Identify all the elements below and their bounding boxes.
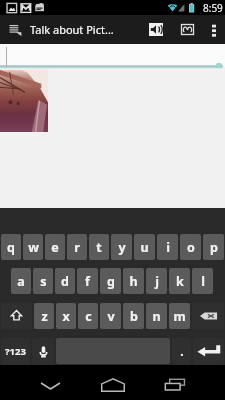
button[interactable]: w bbox=[23, 234, 43, 260]
staticText: e bbox=[51, 239, 59, 256]
button[interactable] bbox=[0, 44, 225, 67]
button[interactable]: Speaker bbox=[141, 15, 171, 44]
button[interactable]: m bbox=[169, 303, 190, 329]
button[interactable]: g bbox=[100, 268, 121, 294]
button[interactable]: n bbox=[146, 303, 167, 329]
button[interactable]: h bbox=[123, 268, 144, 294]
staticText: u bbox=[140, 239, 149, 256]
button[interactable]: d bbox=[55, 268, 75, 294]
button[interactable]: e bbox=[45, 234, 65, 260]
button[interactable]: q bbox=[1, 234, 21, 260]
staticText: a bbox=[17, 273, 25, 290]
button[interactable]: k bbox=[169, 268, 190, 294]
button[interactable]: . bbox=[172, 338, 191, 364]
staticText: f bbox=[85, 273, 90, 290]
button[interactable]: More options bbox=[203, 15, 225, 44]
button[interactable]: Attached photo bbox=[0, 70, 48, 132]
staticText: Talk about Pict... bbox=[30, 22, 114, 37]
staticText: c bbox=[85, 308, 92, 325]
button[interactable]: Hide keyboard bbox=[19, 365, 81, 400]
button[interactable]: Recent apps bbox=[144, 365, 206, 400]
button[interactable]: b bbox=[123, 303, 144, 329]
button[interactable]: Switch camera bbox=[171, 15, 203, 44]
button[interactable]: u bbox=[134, 234, 155, 260]
staticText: l bbox=[201, 273, 205, 290]
staticText: v bbox=[107, 308, 115, 325]
staticText: 8:59 bbox=[203, 1, 223, 15]
button[interactable]: j bbox=[146, 268, 167, 294]
staticText: g bbox=[107, 273, 115, 290]
staticText: z bbox=[41, 308, 48, 325]
button[interactable]: Shift bbox=[1, 303, 32, 329]
button[interactable]: Navigate up bbox=[0, 15, 30, 44]
button[interactable]: ?123 bbox=[1, 338, 30, 364]
staticText: i bbox=[166, 239, 170, 256]
button[interactable]: Voice input bbox=[32, 338, 54, 364]
button[interactable]: Enter bbox=[193, 338, 224, 364]
staticText: p bbox=[210, 239, 218, 256]
staticText: d bbox=[61, 273, 69, 290]
staticText: o bbox=[187, 239, 195, 256]
staticText: w bbox=[28, 239, 39, 256]
other: Navigate up bbox=[9, 23, 22, 36]
button[interactable]: c bbox=[78, 303, 98, 329]
staticText: ?123 bbox=[5, 345, 26, 358]
button[interactable]: o bbox=[180, 234, 201, 260]
button[interactable]: r bbox=[67, 234, 87, 260]
staticText: m bbox=[173, 308, 186, 325]
staticText: n bbox=[152, 308, 161, 325]
button[interactable]: f bbox=[77, 268, 98, 294]
button[interactable]: z bbox=[34, 303, 54, 329]
staticText: j bbox=[155, 273, 159, 290]
button[interactable]: Home bbox=[82, 365, 144, 400]
staticText: b bbox=[130, 308, 138, 325]
staticText: s bbox=[40, 273, 47, 290]
button[interactable]: a bbox=[11, 268, 31, 294]
staticText: . bbox=[180, 343, 184, 359]
staticText: k bbox=[176, 273, 184, 290]
staticText: x bbox=[62, 308, 70, 325]
button[interactable]: i bbox=[157, 234, 178, 260]
button[interactable]: t bbox=[89, 234, 109, 260]
staticText: r bbox=[74, 239, 80, 256]
staticText: y bbox=[118, 239, 126, 256]
button[interactable]: y bbox=[111, 234, 132, 260]
staticText: t bbox=[96, 239, 102, 256]
button[interactable]: x bbox=[56, 303, 76, 329]
button[interactable]: v bbox=[100, 303, 121, 329]
button[interactable]: Delete bbox=[192, 303, 224, 329]
button[interactable]: l bbox=[192, 268, 213, 294]
staticText: h bbox=[129, 273, 138, 290]
button[interactable]: p bbox=[203, 234, 224, 260]
button[interactable]: s bbox=[33, 268, 53, 294]
staticText: q bbox=[7, 239, 15, 256]
